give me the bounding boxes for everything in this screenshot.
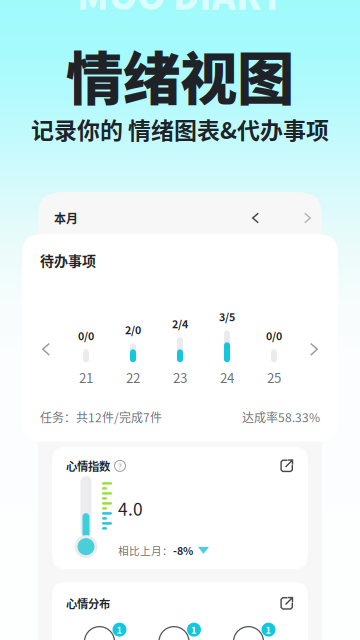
button[interactable]: 上一月 — [245, 205, 266, 230]
staticText: 相比上月： — [118, 543, 173, 558]
staticText: 记录你的 情绪图表&代办事项 — [31, 112, 329, 146]
staticText: 本月 — [54, 209, 78, 227]
staticText: 达成率58.33% — [242, 408, 320, 426]
button[interactable]: 查看心情指数详情 — [276, 456, 297, 476]
staticText: 1 — [191, 623, 197, 636]
staticText: 心情指数 — [66, 458, 110, 474]
staticText: MOO DIARY — [77, 0, 283, 20]
staticText: 23 — [173, 368, 187, 387]
staticText: 4.0 — [118, 496, 143, 521]
staticText: 0/0 — [266, 328, 282, 343]
button[interactable]: 查看心情分布详情 — [276, 593, 297, 614]
button[interactable]: 上一页 — [35, 336, 57, 363]
staticText: 25 — [267, 368, 281, 387]
staticText: 待办事项 — [40, 250, 96, 270]
button[interactable]: 下一页 — [303, 336, 325, 363]
staticText: -8% — [173, 543, 193, 558]
staticText: 3/5 — [219, 309, 235, 324]
staticText: ? — [118, 460, 122, 472]
staticText: 24 — [220, 368, 234, 387]
staticText: 21 — [79, 368, 93, 387]
staticText: 心情分布 — [66, 595, 110, 612]
staticText: 0/0 — [78, 328, 94, 343]
button[interactable]: 下一月 — [297, 205, 318, 230]
staticText: 22 — [126, 368, 140, 387]
staticText: 1 — [265, 623, 271, 636]
staticText: 情绪视图 — [66, 33, 294, 116]
staticText: 2/4 — [172, 316, 188, 331]
staticText: 2/0 — [125, 322, 141, 337]
staticText: 1 — [116, 623, 122, 636]
staticText: 任务：共12件/完成7件 — [40, 408, 162, 426]
